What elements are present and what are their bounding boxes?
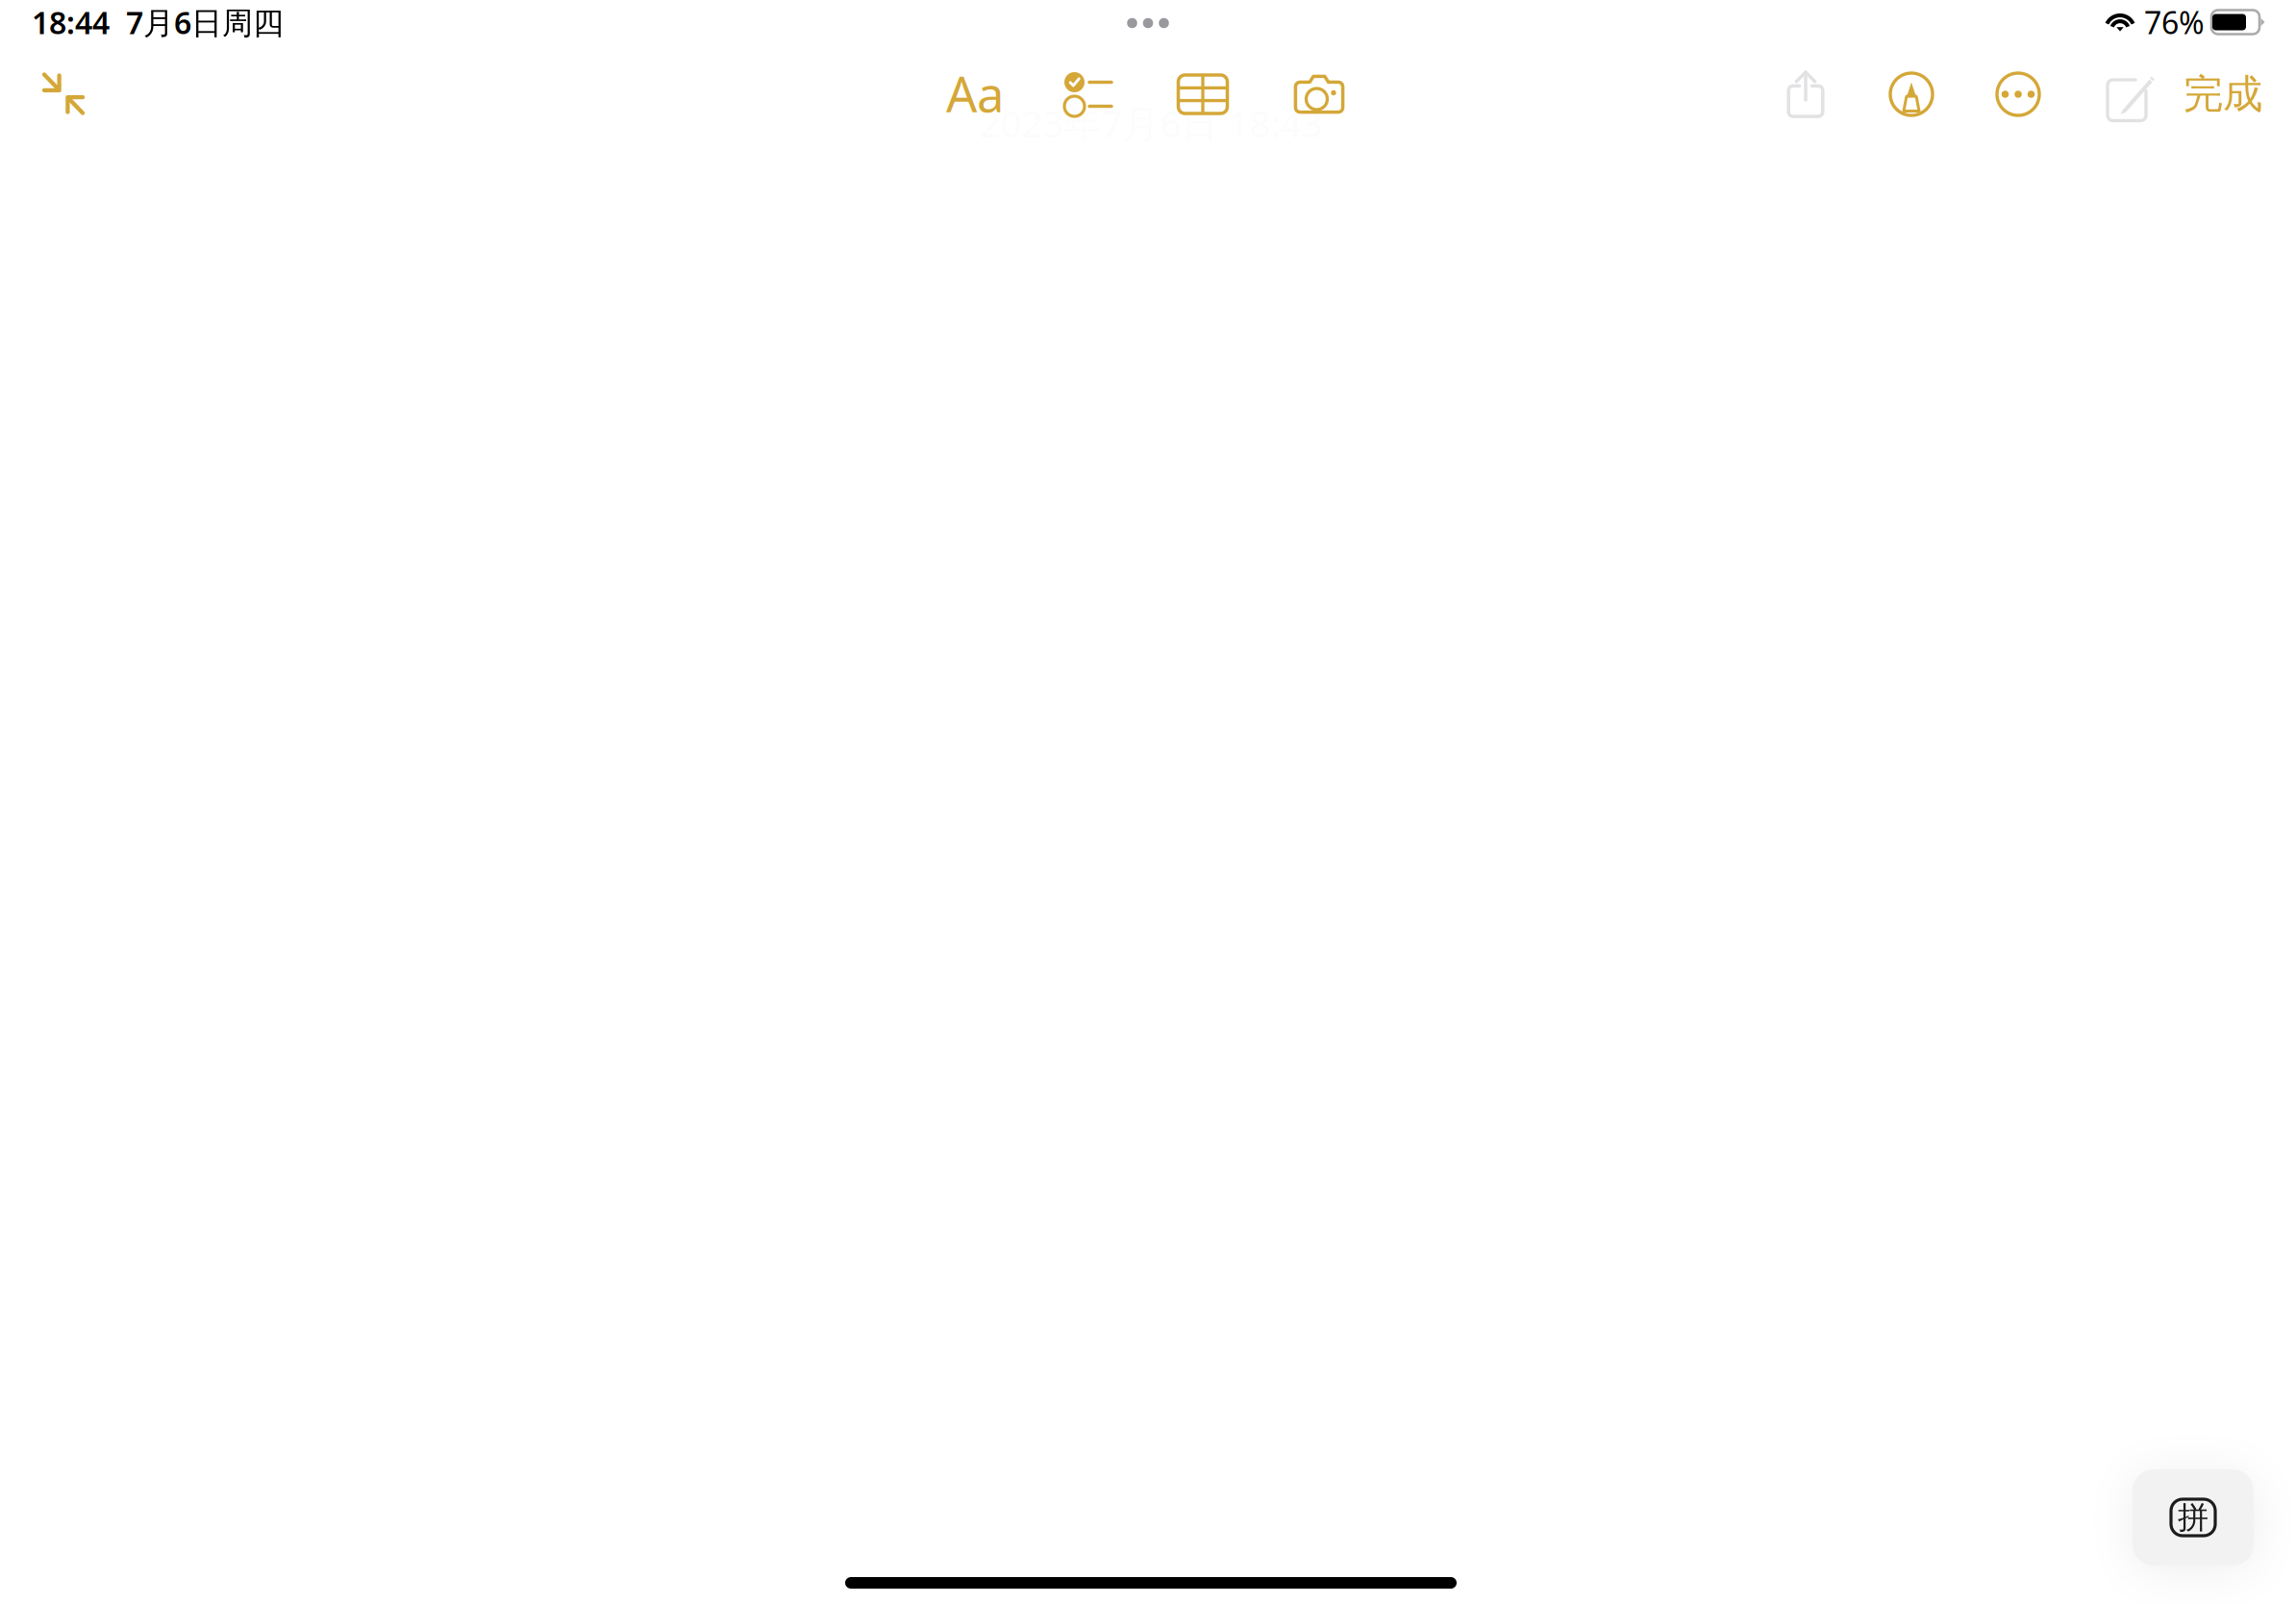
staticText: 18:44 [32, 2, 110, 43]
staticText: 7月6日周四 [126, 2, 284, 43]
staticText: Aa [946, 61, 1004, 126]
staticText: 2023年7月6日 18:43 [979, 98, 1323, 148]
button[interactable]: 备忘录正文 [0, 142, 2296, 1604]
button[interactable]: 格式 [938, 57, 1011, 130]
button[interactable]: 新建备忘录 [2094, 61, 2167, 134]
staticText: 76% [2144, 2, 2205, 43]
button[interactable]: 标记 [1875, 58, 1948, 131]
button[interactable]: 退出全屏 [27, 58, 100, 131]
staticText: 拼 [2178, 1499, 2209, 1536]
button[interactable]: 相机 [1283, 58, 1356, 131]
button[interactable]: 表格 [1166, 58, 1239, 131]
button[interactable]: 共享 [1769, 58, 1842, 131]
staticText: 完成 [2184, 70, 2262, 119]
button[interactable]: 更多 [1982, 58, 2055, 131]
button[interactable]: 清单 [1052, 58, 1125, 131]
button[interactable]: 输入法 [2133, 1469, 2254, 1566]
button[interactable]: 完成 [2170, 63, 2276, 126]
